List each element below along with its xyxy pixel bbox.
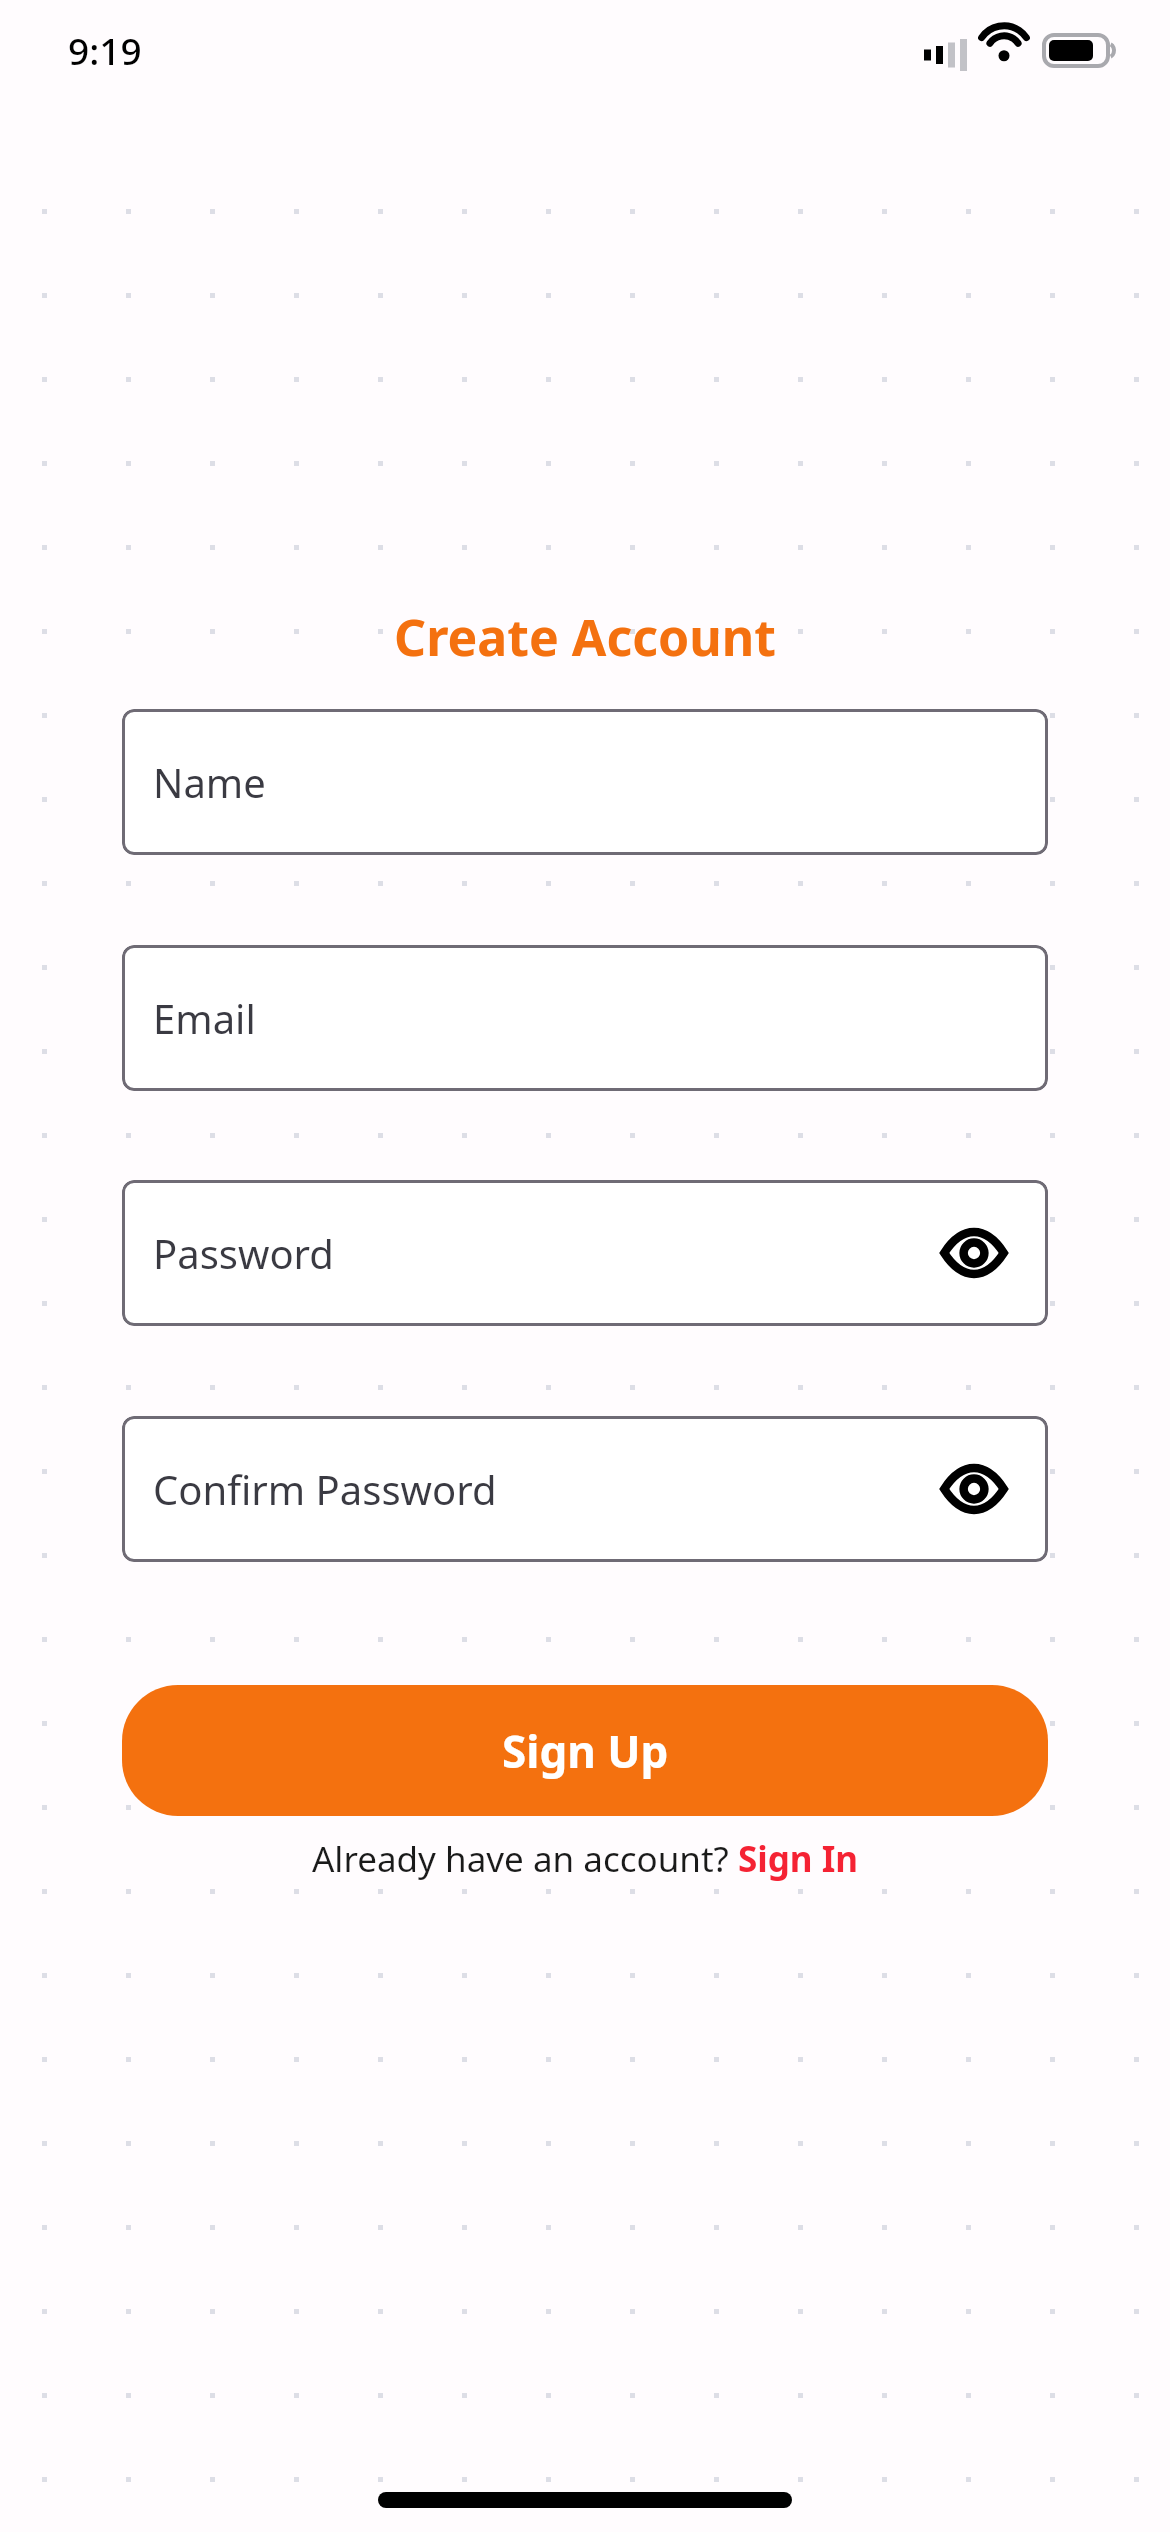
button[interactable]: Sign Up [122, 1685, 1048, 1816]
button[interactable]: Password [122, 1180, 1048, 1326]
staticText: Email [153, 991, 256, 1045]
button[interactable]: Confirm Password [122, 1416, 1048, 1562]
staticText: Confirm Password [153, 1462, 497, 1516]
staticText: 9:19 [68, 25, 142, 75]
staticText: Password [153, 1226, 334, 1280]
staticText: Name [153, 755, 266, 809]
staticText: Sign Up [502, 1721, 669, 1781]
button[interactable]: Name [122, 709, 1048, 855]
staticText: Sign In [738, 1835, 859, 1883]
button[interactable]: Show password [936, 1451, 1012, 1527]
staticText: Create Account [0, 603, 1170, 671]
button[interactable]: Show password [936, 1215, 1012, 1291]
staticText: Already have an account? [312, 1835, 738, 1883]
button[interactable]: Sign In [738, 1835, 859, 1883]
button[interactable]: Email [122, 945, 1048, 1091]
